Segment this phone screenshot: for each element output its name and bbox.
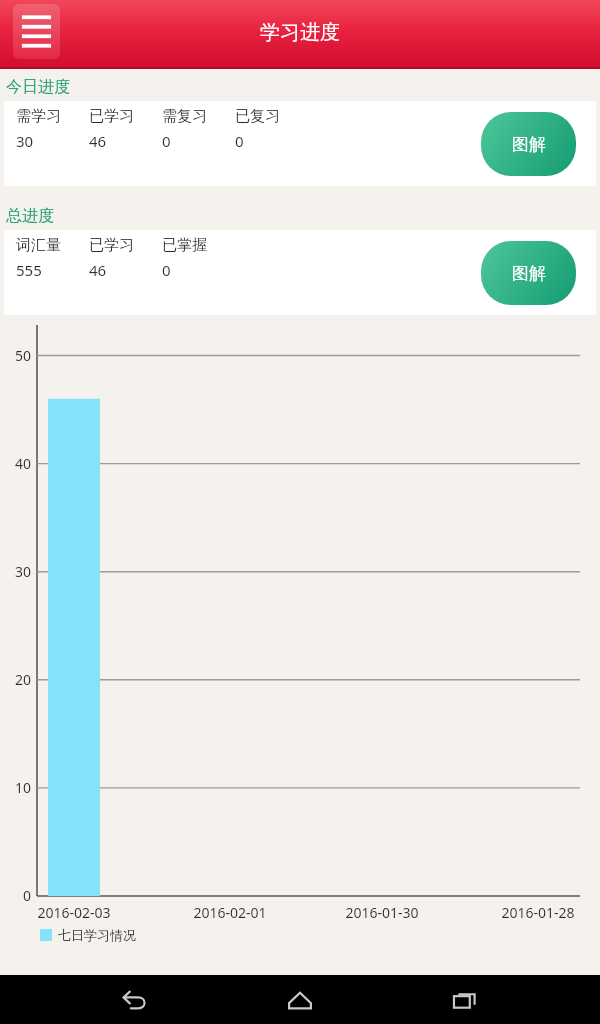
staticText: 图解 — [512, 263, 546, 284]
staticText: 46 — [89, 131, 107, 151]
staticText: 0 — [23, 886, 32, 905]
staticText: 0 — [162, 131, 171, 151]
staticText: 2016-01-28 — [501, 903, 575, 922]
staticText: 今日进度 — [6, 77, 70, 97]
staticText: 0 — [162, 260, 171, 280]
staticText: 40 — [15, 454, 32, 473]
staticText: 10 — [15, 778, 32, 797]
staticText: 词汇量 — [16, 236, 61, 255]
staticText: 0 — [235, 131, 244, 151]
staticText: 已复习 — [235, 107, 280, 126]
button[interactable]: 图解 — [481, 241, 576, 305]
button[interactable]: Menu — [13, 4, 60, 59]
staticText: 总进度 — [6, 206, 54, 226]
staticText: 30 — [16, 131, 34, 151]
staticText: 需复习 — [162, 107, 207, 126]
staticText: 需学习 — [16, 107, 61, 126]
staticText: 学习进度 — [260, 20, 340, 45]
staticText: 30 — [15, 562, 32, 581]
button[interactable]: Back — [105, 975, 165, 1024]
staticText: 已学习 — [89, 236, 134, 255]
staticText: 图解 — [512, 134, 546, 155]
button[interactable]: Home — [270, 975, 330, 1024]
button[interactable]: 词汇量 — [4, 230, 596, 315]
staticText: 50 — [15, 346, 32, 365]
staticText: 已掌握 — [162, 236, 207, 255]
staticText: 已学习 — [89, 107, 134, 126]
staticText: 七日学习情况 — [58, 927, 136, 943]
staticText: 2016-02-03 — [37, 903, 111, 922]
staticText: 555 — [16, 260, 42, 280]
button[interactable]: 图解 — [481, 112, 576, 176]
staticText: 20 — [15, 670, 32, 689]
staticText: 46 — [89, 260, 107, 280]
staticText: 2016-01-30 — [345, 903, 419, 922]
staticText: 2016-02-01 — [193, 903, 267, 922]
button[interactable]: Recent apps — [435, 975, 495, 1024]
button[interactable]: 需学习 — [4, 101, 596, 186]
